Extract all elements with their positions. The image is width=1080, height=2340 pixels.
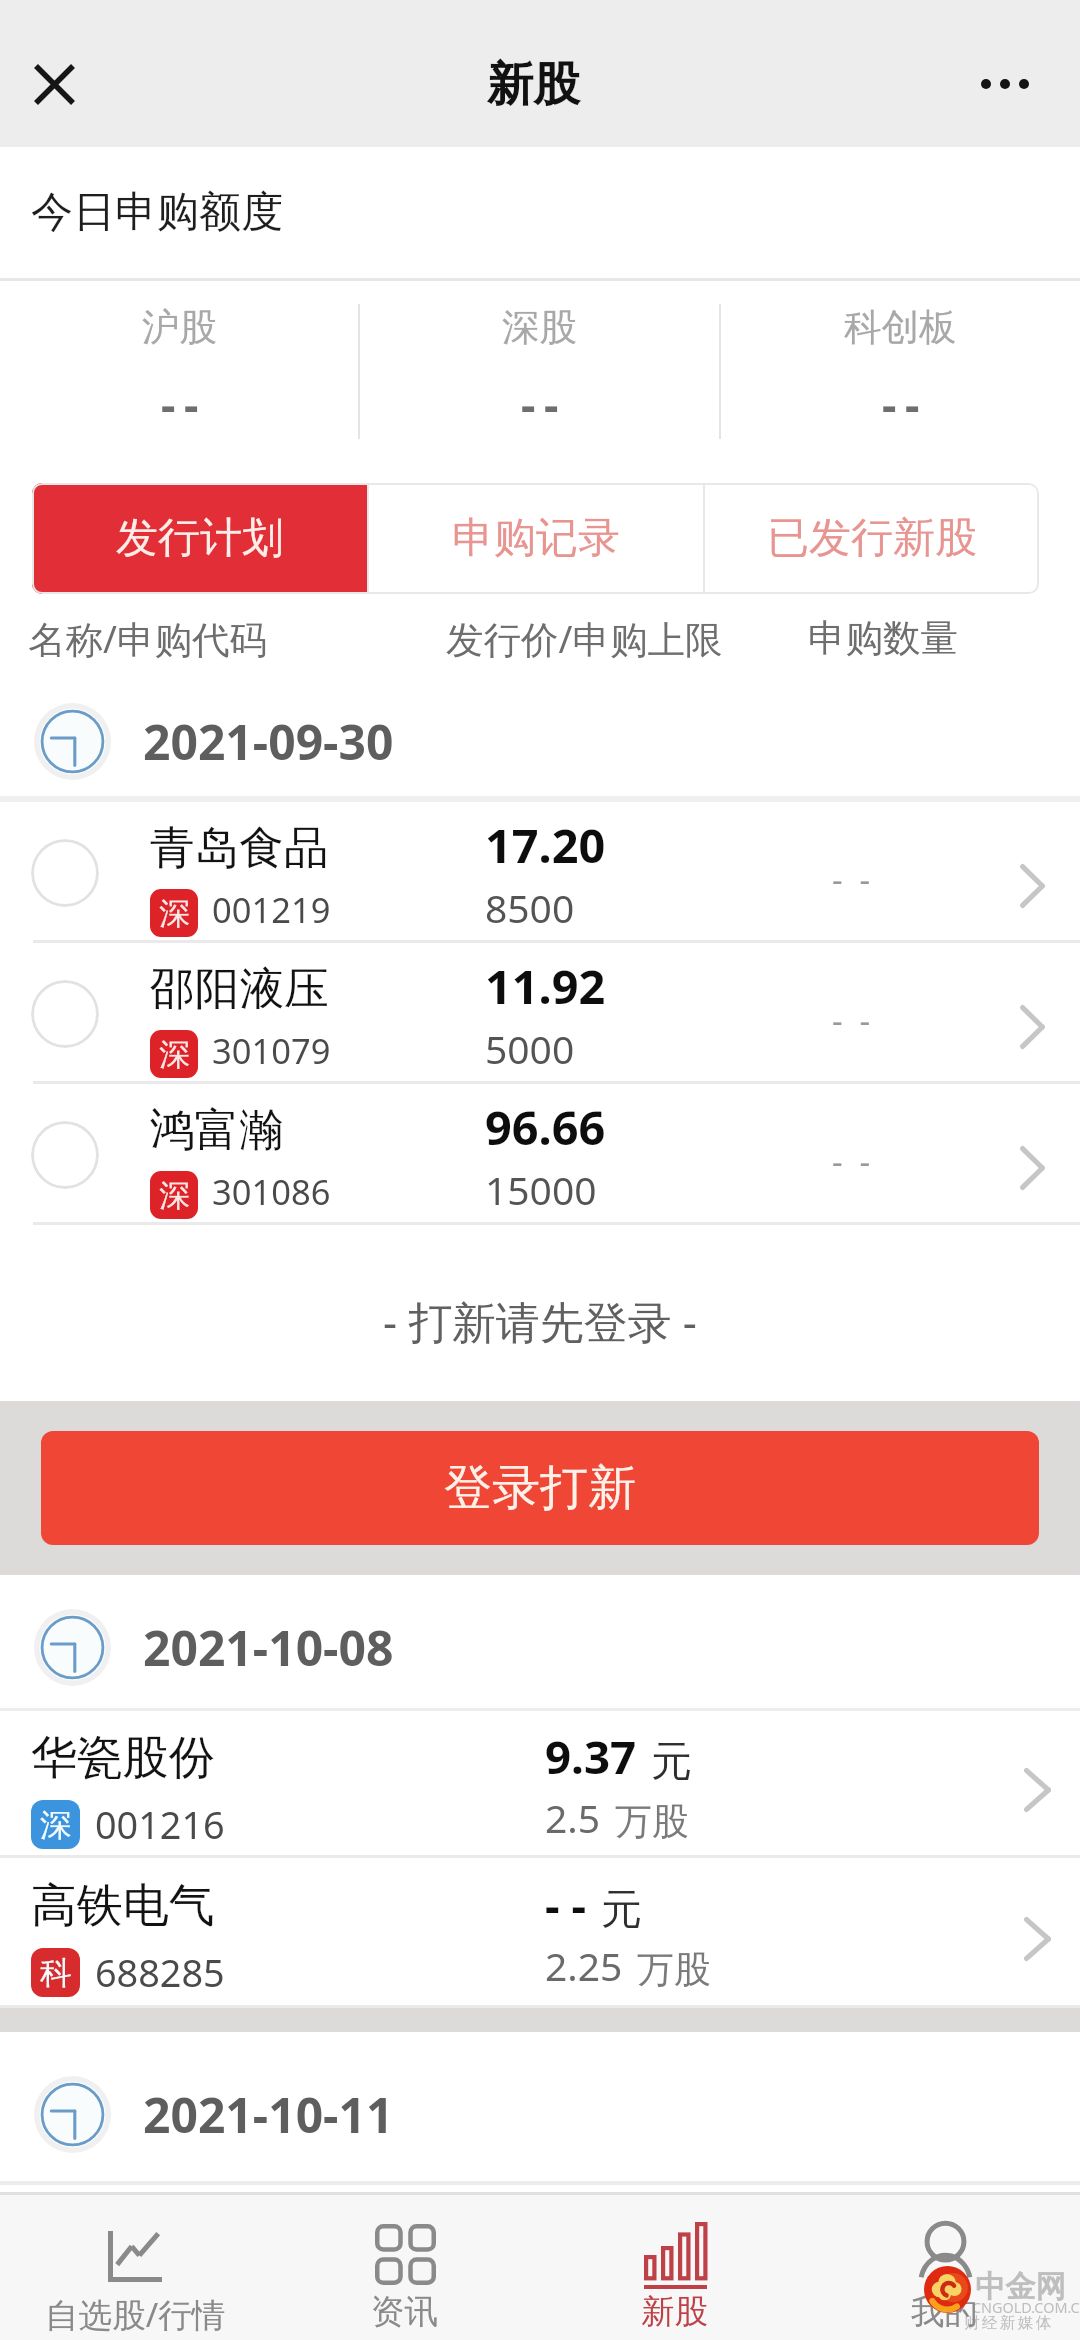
button[interactable]: More options xyxy=(957,36,1053,132)
staticText: 新股 xyxy=(641,2291,709,2333)
button[interactable]: 科创板 xyxy=(721,281,1080,461)
staticText: 深股 xyxy=(502,304,577,351)
staticText: 001216 xyxy=(95,1799,225,1850)
button[interactable]: 自选股/行情 xyxy=(0,2195,270,2340)
staticText: 登录打新 xyxy=(444,1458,636,1518)
staticText: 青岛食品 xyxy=(150,820,329,876)
staticText: 申购数量 xyxy=(808,615,958,662)
staticText: 新股 xyxy=(487,55,580,114)
staticText: 深 xyxy=(159,1176,190,1215)
button[interactable]: 发行计划 xyxy=(32,483,367,594)
staticText: 科创板 xyxy=(844,304,957,351)
staticText: 名称/申购代码 xyxy=(28,613,267,664)
staticText: 元 xyxy=(601,1883,643,1935)
staticText: 元 xyxy=(651,1735,693,1787)
button[interactable]: 华瓷股份 xyxy=(0,1711,1080,1855)
staticText: 华瓷股份 xyxy=(31,1729,215,1787)
staticText: 96.66 xyxy=(485,1095,606,1159)
staticText: 万股 xyxy=(637,1946,711,1992)
button[interactable]: 深股 xyxy=(360,281,719,461)
button[interactable]: 沪股 xyxy=(0,281,358,461)
staticText: 5000 xyxy=(485,1022,575,1075)
staticText: - - xyxy=(882,373,919,434)
staticText: 万股 xyxy=(615,1798,689,1844)
staticText: 2021-09-30 xyxy=(143,709,394,774)
staticText: 发行计划 xyxy=(116,512,284,565)
button[interactable]: 鸿富瀚 xyxy=(0,1084,1080,1222)
staticText: 高铁电气 xyxy=(31,1877,215,1935)
button[interactable]: 已发行新股 xyxy=(705,483,1039,594)
staticText: 2.5 xyxy=(545,1791,601,1844)
staticText: 2021-10-08 xyxy=(143,1615,394,1680)
button[interactable]: Close xyxy=(6,36,102,132)
staticText: 自选股/行情 xyxy=(45,2291,226,2337)
staticText: - - xyxy=(832,1139,875,1184)
staticText: - 打新请先登录 - xyxy=(383,1291,697,1351)
staticText: 深 xyxy=(40,1805,72,1845)
staticText: 8500 xyxy=(485,881,575,934)
button[interactable]: 邵阳液压 xyxy=(0,943,1080,1081)
staticText: 301086 xyxy=(212,1168,331,1215)
staticText: 688285 xyxy=(95,1947,225,1998)
staticText: 17.20 xyxy=(485,813,606,877)
staticText: 9.37 xyxy=(545,1725,637,1787)
staticText: - - xyxy=(521,373,558,434)
staticText: 2.25 xyxy=(545,1939,623,1992)
staticText: 11.92 xyxy=(485,954,606,1018)
button[interactable]: 新股 xyxy=(540,2195,810,2340)
staticText: 301079 xyxy=(212,1027,331,1074)
staticText: 鸿富瀚 xyxy=(150,1102,285,1158)
staticText: 001219 xyxy=(212,886,331,933)
button[interactable]: 青岛食品 xyxy=(0,802,1080,940)
staticText: - - xyxy=(832,998,875,1043)
staticText: 我的 xyxy=(911,2291,979,2333)
staticText: 发行价/申购上限 xyxy=(446,613,723,664)
staticText: 今日申购额度 xyxy=(31,186,283,239)
staticText: 中金网 xyxy=(975,2268,1066,2306)
staticText: 资讯 xyxy=(371,2291,439,2333)
staticText: 深 xyxy=(159,1035,190,1074)
staticText: 沪股 xyxy=(142,304,217,351)
staticText: 已发行新股 xyxy=(767,512,977,565)
staticText: 深 xyxy=(159,894,190,933)
staticText: 申购记录 xyxy=(452,512,620,565)
staticText: - - xyxy=(545,1873,587,1935)
staticText: - - xyxy=(161,373,198,434)
staticText: 2021-10-11 xyxy=(143,2082,394,2147)
staticText: CNGOLD.COM.CN xyxy=(972,2298,1080,2318)
staticText: 15000 xyxy=(485,1163,597,1216)
button[interactable]: 高铁电气 xyxy=(0,1858,1080,2005)
staticText: - - xyxy=(832,857,875,902)
staticText: 财经新媒体 xyxy=(964,2313,1054,2333)
button[interactable]: 登录打新 xyxy=(41,1431,1039,1545)
button[interactable]: 资讯 xyxy=(270,2195,540,2340)
button[interactable]: 申购记录 xyxy=(369,483,703,594)
button[interactable]: 我的 xyxy=(810,2195,1080,2340)
staticText: 邵阳液压 xyxy=(150,961,329,1017)
staticText: 科 xyxy=(40,1953,72,1993)
